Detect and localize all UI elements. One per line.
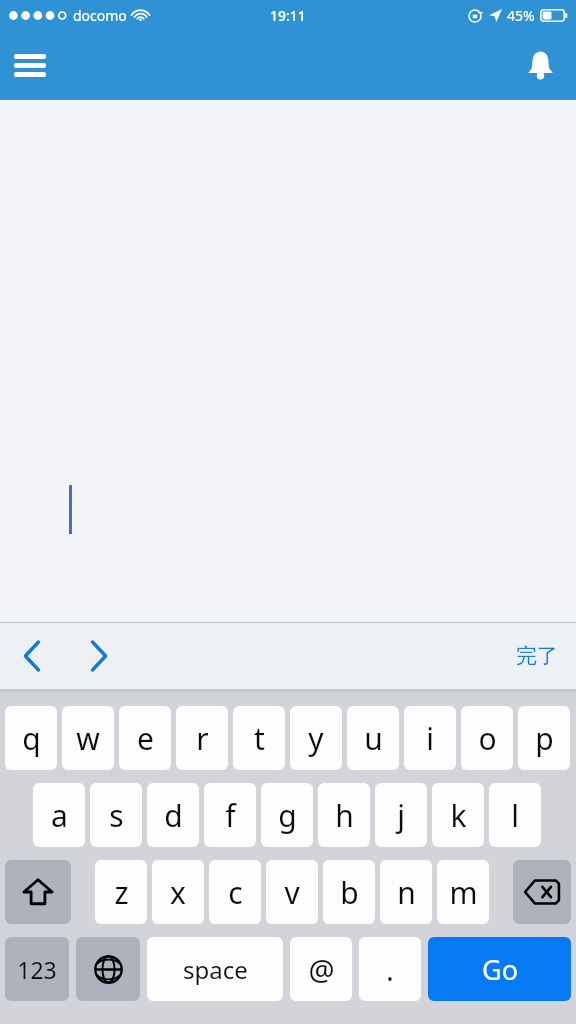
button[interactable]: d (147, 783, 199, 847)
button[interactable]: Previous field (8, 632, 56, 680)
button[interactable]: i (404, 706, 456, 770)
staticText: 19:11 (270, 6, 306, 25)
staticText: b (340, 872, 359, 913)
staticText: Go (482, 951, 518, 988)
button[interactable]: k (432, 783, 484, 847)
button[interactable]: e (119, 706, 171, 770)
staticText: d (164, 795, 183, 836)
staticText: a (51, 795, 68, 836)
button[interactable]: 123 (5, 937, 69, 1001)
button[interactable]: j (375, 783, 427, 847)
staticText: 完了 (516, 643, 558, 669)
button[interactable]: g (261, 783, 313, 847)
staticText: g (278, 795, 297, 836)
staticText: y (308, 718, 324, 759)
staticText: x (170, 872, 186, 913)
staticText: j (397, 795, 405, 836)
staticText: o (478, 718, 497, 759)
staticText: f (225, 795, 236, 836)
staticText: 123 (17, 954, 57, 985)
button[interactable]: u (347, 706, 399, 770)
staticText: m (449, 872, 478, 913)
staticText: docomo (73, 6, 127, 25)
button[interactable]: 完了 (510, 635, 564, 677)
button[interactable]: n (380, 860, 432, 924)
staticText: q (22, 718, 41, 759)
button[interactable]: w (62, 706, 114, 770)
button[interactable]: f (204, 783, 256, 847)
button[interactable]: o (461, 706, 513, 770)
staticText: @ (308, 950, 335, 989)
staticText: w (76, 718, 100, 759)
staticText: l (511, 795, 519, 836)
button[interactable]: a (33, 783, 85, 847)
staticText: u (364, 718, 383, 759)
staticText: r (196, 718, 209, 759)
button[interactable]: Shift (5, 860, 71, 924)
staticText: k (450, 795, 467, 836)
button[interactable]: Notifications (514, 39, 566, 91)
staticText: c (228, 872, 243, 913)
button[interactable]: q (5, 706, 57, 770)
button[interactable]: Next field (74, 632, 122, 680)
staticText: i (426, 718, 434, 759)
button[interactable]: b (323, 860, 375, 924)
staticText: n (397, 872, 416, 913)
button[interactable]: . (359, 937, 421, 1001)
button[interactable]: Switch keyboard (76, 937, 140, 1001)
staticText: z (114, 872, 129, 913)
staticText: p (535, 718, 554, 759)
staticText: h (335, 795, 354, 836)
button[interactable]: v (266, 860, 318, 924)
staticText: 45% (507, 6, 535, 25)
button[interactable]: x (152, 860, 204, 924)
staticText: v (284, 872, 300, 913)
button[interactable]: c (209, 860, 261, 924)
button[interactable]: Menu (4, 39, 56, 91)
button[interactable]: r (176, 706, 228, 770)
button[interactable]: s (90, 783, 142, 847)
staticText: space (183, 953, 248, 986)
button[interactable]: Go (428, 937, 571, 1001)
button[interactable]: space (147, 937, 283, 1001)
staticText: t (254, 718, 265, 759)
staticText: . (386, 950, 394, 989)
button[interactable]: z (95, 860, 147, 924)
button[interactable]: y (290, 706, 342, 770)
staticText: e (137, 718, 154, 759)
button[interactable]: p (518, 706, 570, 770)
button[interactable]: l (489, 783, 541, 847)
button[interactable]: h (318, 783, 370, 847)
button[interactable]: m (437, 860, 489, 924)
button[interactable]: Backspace (513, 860, 571, 924)
button[interactable]: @ (290, 937, 352, 1001)
button[interactable]: t (233, 706, 285, 770)
staticText: s (109, 795, 124, 836)
